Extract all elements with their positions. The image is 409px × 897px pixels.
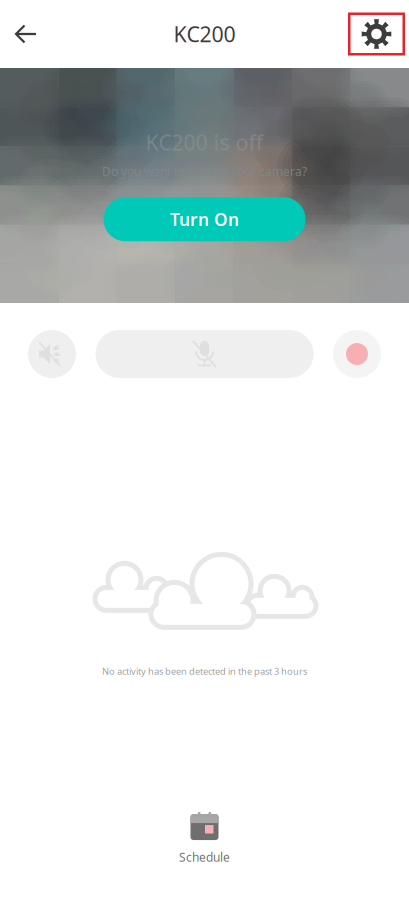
staticText: KC200 xyxy=(173,20,235,48)
staticText: No activity has been detected in the pas… xyxy=(102,665,307,677)
button[interactable]: Speaker muted xyxy=(28,330,76,378)
button[interactable]: Turn On xyxy=(103,197,305,241)
button[interactable]: Back xyxy=(0,8,52,60)
staticText: Turn On xyxy=(170,208,239,231)
staticText: KC200 is off xyxy=(145,128,263,156)
staticText: Do you want to turn on your camera? xyxy=(102,163,307,179)
button[interactable]: Microphone muted xyxy=(95,330,313,378)
button[interactable]: Schedule xyxy=(0,804,409,897)
button[interactable]: Record xyxy=(333,330,381,378)
staticText: Schedule xyxy=(179,849,230,865)
button[interactable]: Settings xyxy=(348,12,405,55)
